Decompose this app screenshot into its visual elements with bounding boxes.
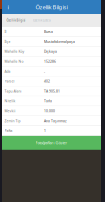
button[interactable]: İlçe [2, 37, 101, 47]
staticText: İl [4, 29, 6, 34]
staticText: Tarla [44, 99, 52, 103]
staticText: Fotoğrafları Göster [35, 140, 67, 145]
staticText: Nitelik [4, 99, 15, 103]
staticText: - [44, 69, 45, 74]
button[interactable]: Mahalle No [2, 57, 101, 67]
button[interactable]: Tapu Alanı [2, 86, 101, 96]
staticText: Parsel [4, 79, 14, 83]
staticText: Mustafakemalpaşa [44, 39, 75, 44]
staticText: Özellik Bilgisi [35, 3, 67, 11]
staticText: Tapu Alanı [4, 89, 21, 93]
staticText: Özellik Listesi [33, 19, 51, 22]
staticText: Mahalle No [4, 59, 23, 64]
button[interactable]: Özellik Bilgisi [3, 14, 29, 27]
staticText: Ada [4, 69, 10, 74]
staticText: 10.000 [44, 109, 55, 113]
button[interactable]: İl [2, 27, 101, 37]
button[interactable]: Mahalle Köy [2, 47, 101, 57]
staticText: Ana Taşınmaz [44, 119, 67, 123]
staticText: Pafta [4, 128, 12, 133]
button[interactable]: Nitelik [2, 96, 101, 106]
staticText: İlçe [4, 39, 10, 44]
button[interactable]: Mevkii [2, 106, 101, 116]
staticText: 1 [44, 128, 46, 133]
staticText: 152286 [44, 59, 56, 64]
button[interactable]: Bilgi [2, 0, 14, 14]
button[interactable]: Parsel [2, 76, 101, 86]
button[interactable]: Ada [2, 67, 101, 76]
staticText: Mahalle Köy [4, 49, 24, 54]
button[interactable]: Zemin Tip [2, 116, 101, 126]
staticText: Dışkaya [44, 49, 57, 54]
staticText: Bursa [44, 29, 53, 34]
button[interactable]: Pafta [2, 126, 101, 136]
staticText: Mevkii [4, 109, 15, 113]
staticText: Özellik Bilgisi [6, 19, 25, 22]
staticText: 402 [44, 79, 50, 83]
button[interactable]: Fotoğrafları Göster [2, 136, 101, 150]
staticText: Zemin Tip [4, 119, 20, 123]
staticText: TA 905.81 [44, 89, 60, 93]
button[interactable]: Özellik Listesi [29, 14, 55, 27]
